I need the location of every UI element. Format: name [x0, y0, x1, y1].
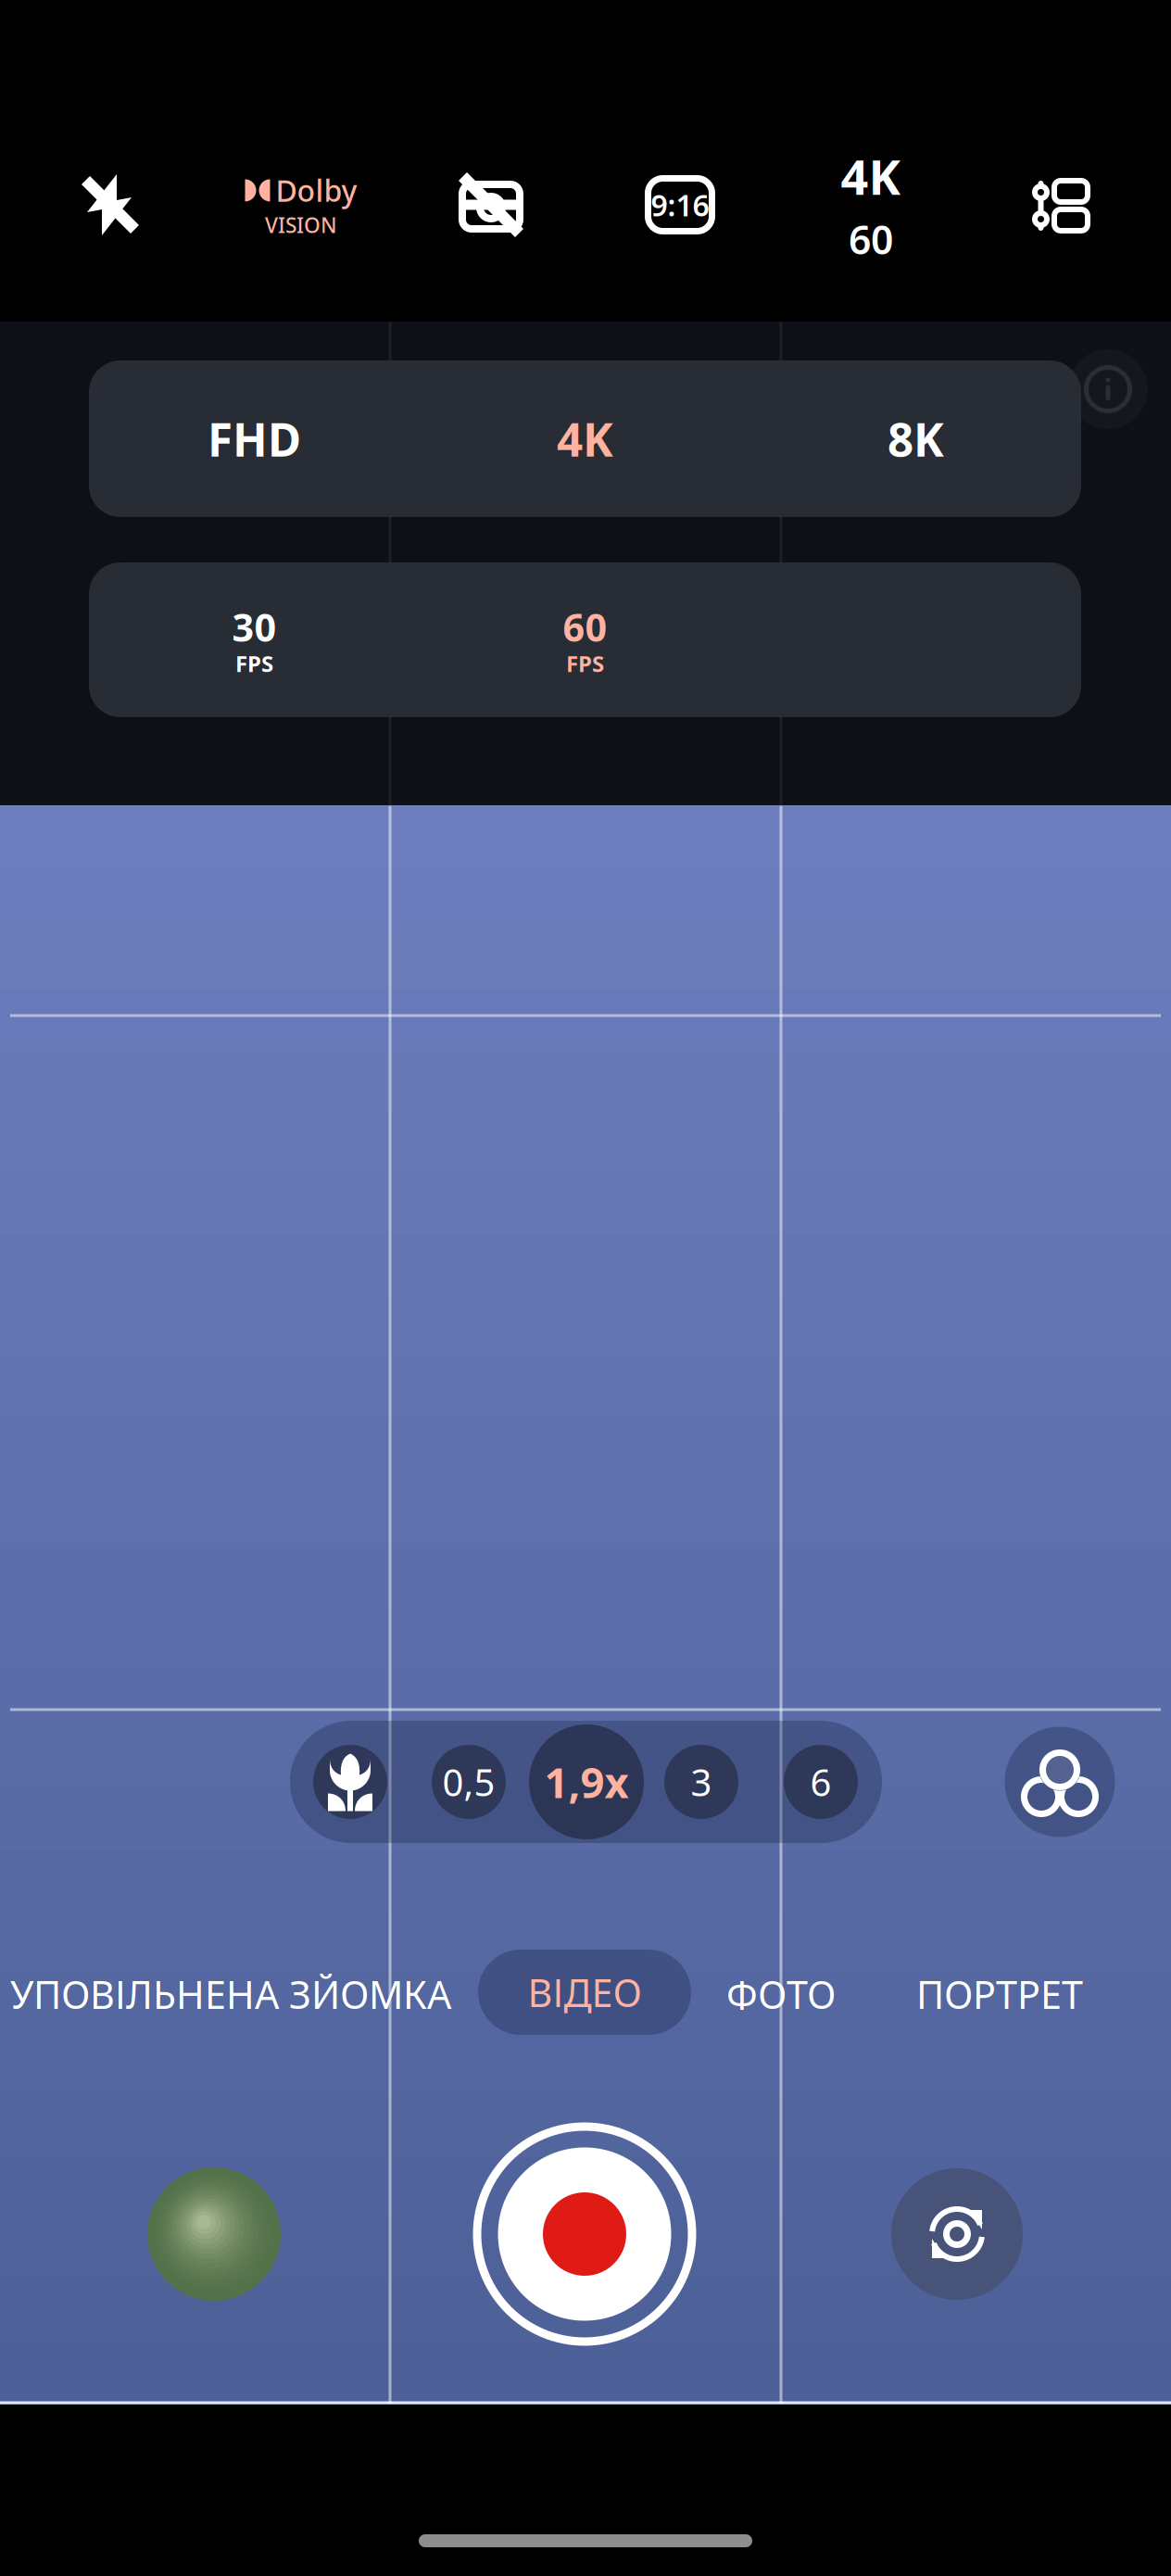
staticText: 9:16 [651, 185, 709, 225]
button[interactable]: Resolution 4K 60 fps [783, 135, 959, 274]
button[interactable]: 0,5 [432, 1745, 506, 1819]
staticText: ФОТО [726, 1969, 836, 2020]
staticText: Dolby [276, 171, 357, 210]
button[interactable]: ПОРТРЕТ [916, 1951, 1083, 2037]
button[interactable]: 60 [420, 562, 750, 717]
staticText: VISION [265, 211, 337, 239]
button[interactable]: Video stabilisation off [403, 135, 579, 274]
button[interactable]: УПОВІЛЬНЕНА ЗЙОМКА [10, 1951, 451, 2037]
staticText: ПОРТРЕТ [916, 1969, 1083, 2020]
staticText: FPS [235, 649, 273, 678]
staticText: 6 [810, 1757, 831, 1806]
staticText: ВІДЕО [528, 1967, 642, 2018]
staticText: 30 [232, 601, 277, 652]
button[interactable]: 30 [89, 562, 420, 717]
button[interactable]: 3 [664, 1745, 738, 1819]
staticText: 1,9x [544, 1754, 629, 1810]
staticText: 4K [557, 408, 613, 469]
button[interactable]: 4K [420, 360, 750, 517]
button[interactable]: 8K [750, 360, 1081, 517]
staticText: FHD [208, 408, 301, 469]
button[interactable]: 1,9x [529, 1724, 644, 1839]
staticText: FPS [566, 649, 604, 678]
staticText: 0,5 [442, 1757, 495, 1806]
staticText: УПОВІЛЬНЕНА ЗЙОМКА [10, 1969, 451, 2020]
button[interactable]: 6 [784, 1745, 858, 1819]
staticText: 4K [841, 144, 901, 208]
staticText: 60 [849, 213, 893, 265]
button[interactable]: ВІДЕО [478, 1950, 691, 2035]
staticText: 60 [563, 601, 607, 652]
button[interactable]: Aspect ratio 9 by 16 [592, 135, 768, 274]
button[interactable]: FHD [89, 360, 420, 517]
staticText: 8K [888, 408, 944, 469]
button[interactable]: More settings [972, 136, 1148, 275]
staticText: 3 [691, 1757, 712, 1806]
button[interactable]: Switch camera [891, 2168, 1023, 2300]
button[interactable]: Dolby Vision [208, 135, 394, 274]
button[interactable]: Colour filters [1005, 1727, 1115, 1837]
button[interactable]: Info [1062, 343, 1154, 436]
button[interactable]: Gallery [147, 2167, 281, 2301]
button[interactable]: ФОТО [726, 1951, 836, 2037]
button[interactable]: Macro [313, 1745, 387, 1819]
button[interactable]: Flash off [22, 135, 198, 274]
button[interactable]: Record [473, 2123, 696, 2345]
